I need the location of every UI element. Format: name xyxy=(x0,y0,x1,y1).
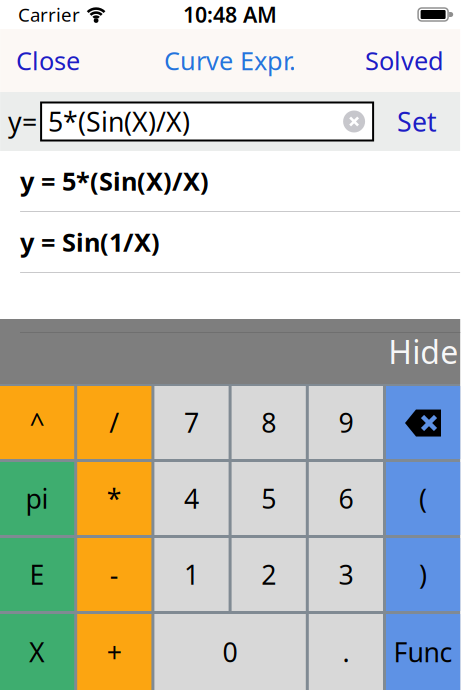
staticText: pi xyxy=(26,481,49,516)
staticText: 9 xyxy=(338,405,353,440)
staticText: 0 xyxy=(223,634,238,670)
button[interactable]: Hide xyxy=(388,330,458,373)
button[interactable]: ( xyxy=(386,462,460,535)
button[interactable]: Clear text xyxy=(343,110,365,132)
button[interactable]: y = 5*(Sin(X)/X) xyxy=(0,151,460,211)
staticText: y = 5*(Sin(X)/X) xyxy=(20,164,209,198)
button[interactable]: 5 xyxy=(232,462,306,535)
staticText: Carrier xyxy=(18,2,80,27)
button[interactable]: ) xyxy=(386,538,460,611)
button[interactable]: Delete xyxy=(386,386,460,459)
button[interactable]: 2 xyxy=(232,538,306,611)
button[interactable]: X xyxy=(0,614,74,690)
staticText: y= xyxy=(8,104,37,139)
staticText: / xyxy=(109,405,119,440)
button[interactable]: Close xyxy=(16,44,80,77)
button[interactable]: 3 xyxy=(309,538,383,611)
button[interactable]: ^ xyxy=(0,386,74,459)
staticText: E xyxy=(30,557,45,592)
button[interactable]: E xyxy=(0,538,74,611)
button[interactable]: pi xyxy=(0,462,74,535)
staticText: Solved xyxy=(365,44,444,77)
button[interactable]: 0 xyxy=(154,614,306,690)
button[interactable]: * xyxy=(77,462,151,535)
staticText: + xyxy=(107,634,122,670)
staticText: 4 xyxy=(184,481,199,516)
staticText: X xyxy=(29,634,45,670)
staticText: 1 xyxy=(184,557,199,592)
button[interactable]: 9 xyxy=(309,386,383,459)
staticText: Close xyxy=(16,44,80,77)
staticText: Hide xyxy=(388,330,458,373)
staticText: 5 xyxy=(261,481,276,516)
staticText: Curve Expr. xyxy=(164,44,296,77)
button[interactable]: / xyxy=(77,386,151,459)
staticText: 5*(Sin(X)/X) xyxy=(48,104,190,139)
staticText: 7 xyxy=(184,405,199,440)
button[interactable]: 6 xyxy=(309,462,383,535)
staticText: y = Sin(1/X) xyxy=(20,225,160,259)
button[interactable]: Solved xyxy=(365,44,444,77)
button[interactable]: + xyxy=(77,614,151,690)
staticText: Set xyxy=(397,104,437,139)
button[interactable]: . xyxy=(309,614,383,690)
button[interactable]: - xyxy=(77,538,151,611)
staticText: 2 xyxy=(261,557,276,592)
button[interactable]: 7 xyxy=(154,386,229,459)
staticText: ^ xyxy=(30,405,45,440)
staticText: 10:48 AM xyxy=(183,0,277,29)
button[interactable]: 1 xyxy=(154,538,229,611)
staticText: . xyxy=(342,634,349,670)
button[interactable]: Func xyxy=(386,614,460,690)
button[interactable]: y = Sin(1/X) xyxy=(0,212,460,272)
staticText: ) xyxy=(419,557,427,592)
button[interactable]: 8 xyxy=(232,386,306,459)
staticText: - xyxy=(110,557,119,592)
staticText: 3 xyxy=(338,557,353,592)
button[interactable]: 4 xyxy=(154,462,229,535)
staticText: 6 xyxy=(338,481,353,516)
staticText: ( xyxy=(419,481,427,516)
staticText: Func xyxy=(394,634,453,670)
staticText: 8 xyxy=(261,405,276,440)
staticText: * xyxy=(107,481,122,516)
button[interactable]: Set xyxy=(397,104,437,139)
